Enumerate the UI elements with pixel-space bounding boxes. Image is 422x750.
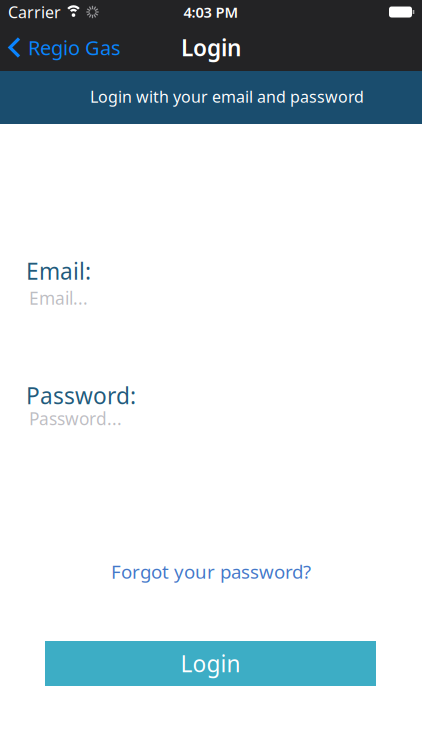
staticText: Login — [181, 32, 241, 62]
button[interactable]: Forgot your password? — [111, 556, 311, 586]
button[interactable]: Regio Gas — [0, 34, 121, 61]
staticText: Login with your email and password — [90, 86, 364, 107]
staticText: Email: — [26, 256, 91, 286]
staticText: Regio Gas — [28, 34, 121, 61]
staticText: 4:03 PM — [183, 2, 238, 22]
button[interactable]: Email... — [29, 281, 393, 315]
staticText: Carrier — [8, 1, 61, 23]
staticText: Email... — [29, 286, 88, 309]
button[interactable]: Password... — [29, 401, 393, 435]
button[interactable]: Login — [45, 641, 376, 686]
staticText: Password: — [26, 380, 136, 410]
staticText: Login — [180, 648, 240, 678]
staticText: Password... — [29, 407, 122, 430]
staticText: Forgot your password? — [111, 559, 311, 584]
